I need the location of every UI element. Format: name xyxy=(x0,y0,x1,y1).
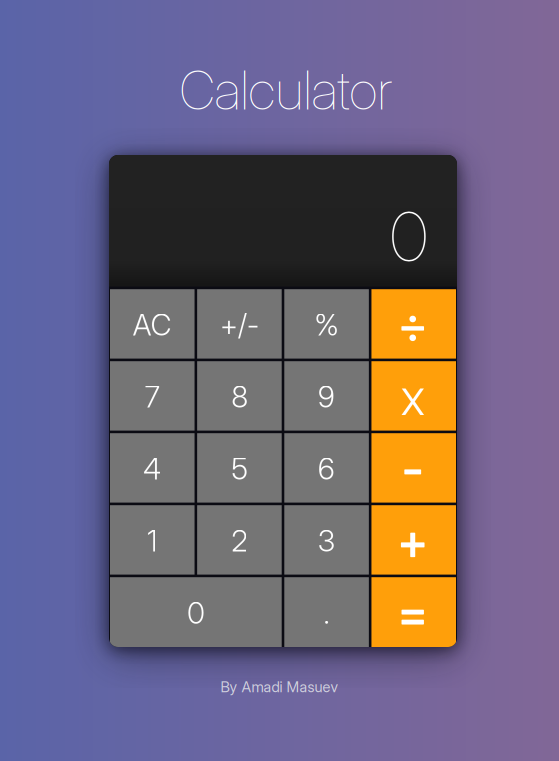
button[interactable]: 1 xyxy=(110,505,195,575)
button[interactable]: Plus xyxy=(371,505,456,575)
staticText: X xyxy=(401,379,425,424)
staticText: 9 xyxy=(318,379,335,415)
button[interactable]: 2 xyxy=(197,505,282,575)
staticText: Calculator xyxy=(179,58,391,122)
button[interactable]: 4 xyxy=(110,433,195,503)
staticText: 8 xyxy=(231,379,247,415)
staticText: 0 xyxy=(390,196,428,278)
button[interactable]: 0 xyxy=(110,577,282,647)
button[interactable]: % xyxy=(284,289,369,359)
button[interactable]: 5 xyxy=(197,433,282,503)
staticText: 1 xyxy=(147,523,157,559)
button[interactable]: Multiply xyxy=(371,361,456,431)
button[interactable]: . xyxy=(284,577,369,647)
staticText: 6 xyxy=(318,451,335,487)
button[interactable]: Divide xyxy=(371,289,456,359)
staticText: . xyxy=(324,595,330,631)
staticText: 2 xyxy=(231,523,247,559)
staticText: 3 xyxy=(318,523,335,559)
button[interactable]: AC xyxy=(110,289,195,359)
button[interactable]: 8 xyxy=(197,361,282,431)
button[interactable]: Minus xyxy=(371,433,456,503)
staticText: 7 xyxy=(145,379,160,415)
staticText: By Amadi Masuev xyxy=(220,678,338,696)
button[interactable]: 6 xyxy=(284,433,369,503)
staticText: 0 xyxy=(187,595,204,631)
button[interactable]: 7 xyxy=(110,361,195,431)
button[interactable]: 9 xyxy=(284,361,369,431)
staticText: AC xyxy=(133,307,172,343)
staticText: % xyxy=(315,307,339,343)
button[interactable]: Equals xyxy=(371,577,456,647)
staticText: 5 xyxy=(231,451,247,487)
staticText: +/- xyxy=(220,307,259,343)
button[interactable]: +/- xyxy=(197,289,282,359)
staticText: 4 xyxy=(143,451,161,487)
button[interactable]: 3 xyxy=(284,505,369,575)
